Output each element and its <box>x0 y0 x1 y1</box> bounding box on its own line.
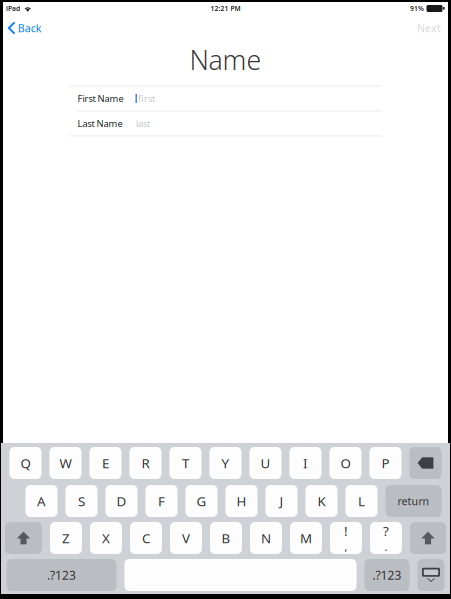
staticText: .?123 <box>372 567 401 583</box>
button[interactable]: V <box>170 522 202 554</box>
staticText: H <box>236 492 246 510</box>
button[interactable]: P <box>369 447 401 479</box>
button[interactable]: M <box>290 522 322 554</box>
button[interactable]: Back <box>3 18 50 38</box>
button[interactable]: Shift <box>410 522 446 554</box>
button[interactable]: W <box>49 447 81 479</box>
button[interactable]: Next <box>408 18 448 38</box>
button[interactable]: K <box>305 485 337 517</box>
staticText: P <box>381 454 389 472</box>
staticText: N <box>261 529 271 547</box>
button[interactable]: G <box>185 485 217 517</box>
button[interactable]: B <box>210 522 242 554</box>
staticText: C <box>142 529 150 547</box>
staticText: D <box>116 492 126 510</box>
staticText: X <box>102 529 110 547</box>
button[interactable]: Last Name <box>69 111 381 135</box>
button[interactable]: U <box>249 447 281 479</box>
button[interactable]: J <box>265 485 297 517</box>
button[interactable]: E <box>89 447 121 479</box>
staticText: K <box>317 492 325 510</box>
staticText: U <box>260 454 270 472</box>
staticText: Next <box>417 21 441 35</box>
button[interactable]: I <box>289 447 321 479</box>
staticText: Name <box>189 42 261 77</box>
button[interactable]: return <box>385 485 441 517</box>
staticText: Last Name <box>77 117 122 130</box>
button[interactable]: .?123 <box>6 559 116 591</box>
staticText: Y <box>221 454 229 472</box>
button[interactable]: Delete <box>409 447 441 479</box>
button[interactable]: Y <box>209 447 241 479</box>
staticText: G <box>196 492 206 510</box>
button[interactable]: H <box>225 485 257 517</box>
button[interactable]: ! <box>330 522 362 554</box>
staticText: J <box>279 492 283 510</box>
button[interactable]: C <box>130 522 162 554</box>
button[interactable]: N <box>250 522 282 554</box>
staticText: W <box>59 454 71 472</box>
staticText: M <box>300 529 312 547</box>
staticText: 91% <box>410 4 424 13</box>
staticText: L <box>358 492 365 510</box>
staticText: . <box>384 540 387 554</box>
button[interactable]: F <box>145 485 177 517</box>
staticText: first <box>138 92 155 105</box>
button[interactable]: S <box>65 485 97 517</box>
button[interactable]: .?123 <box>364 559 409 591</box>
staticText: Back <box>18 21 42 35</box>
button[interactable]: T <box>169 447 201 479</box>
staticText: R <box>141 454 149 472</box>
staticText: O <box>340 454 350 472</box>
staticText: I <box>303 454 308 472</box>
button[interactable]: ? <box>370 522 402 554</box>
button[interactable]: Shift <box>5 522 42 554</box>
staticText: T <box>182 454 189 472</box>
staticText: First Name <box>77 92 123 105</box>
staticText: ! <box>344 522 348 540</box>
button[interactable]: Z <box>50 522 82 554</box>
staticText: S <box>78 492 85 510</box>
staticText: Z <box>62 529 70 547</box>
staticText: B <box>221 529 230 547</box>
button[interactable]: X <box>90 522 122 554</box>
button[interactable]: L <box>345 485 377 517</box>
button[interactable]: A <box>25 485 57 517</box>
staticText: iPad <box>6 4 20 13</box>
staticText: Q <box>20 454 30 472</box>
staticText: ? <box>383 522 389 540</box>
staticText: V <box>182 529 190 547</box>
staticText: E <box>102 454 109 472</box>
button[interactable]: Hide Keyboard <box>417 559 444 591</box>
button[interactable]: Q <box>9 447 41 479</box>
staticText: last <box>136 117 150 130</box>
staticText: 12:21 PM <box>210 4 240 13</box>
button[interactable]: D <box>105 485 137 517</box>
staticText: , <box>344 540 347 554</box>
staticText: A <box>37 492 46 510</box>
button[interactable]: O <box>329 447 361 479</box>
staticText: F <box>158 492 165 510</box>
staticText: .?123 <box>47 567 76 583</box>
button[interactable]: First Name <box>69 86 381 110</box>
button[interactable]: R <box>129 447 161 479</box>
staticText: return <box>397 494 429 508</box>
